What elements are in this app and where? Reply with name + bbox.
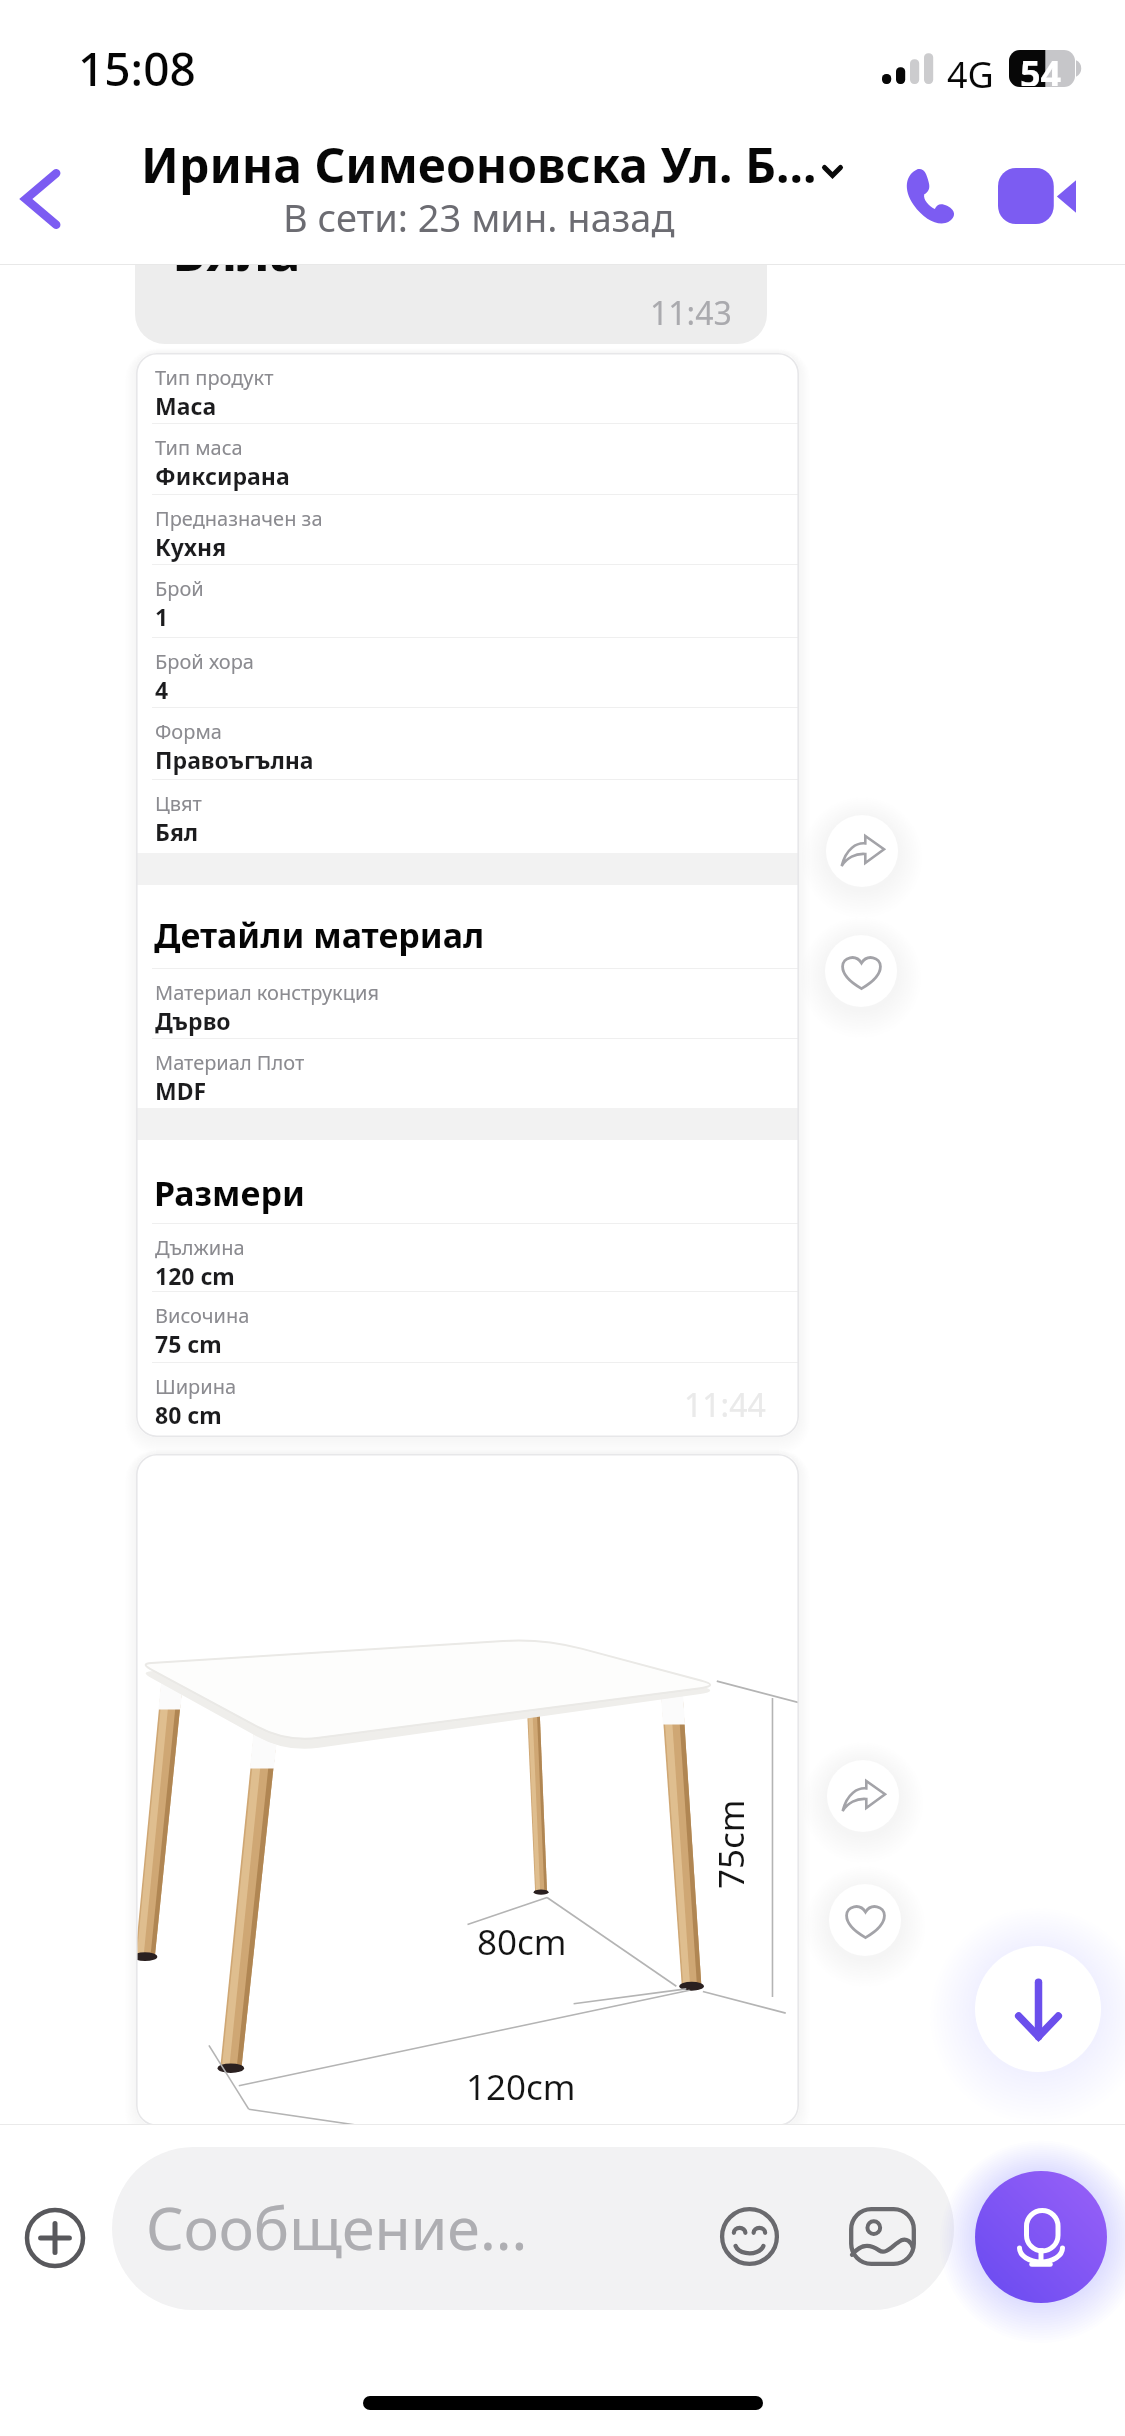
- staticText: Кухня: [155, 531, 227, 562]
- button[interactable]: Send image: [837, 2196, 927, 2276]
- button[interactable]: Сообщение...: [112, 2147, 954, 2310]
- staticText: Брой: [155, 575, 204, 602]
- staticText: 80cm: [477, 1918, 567, 1966]
- staticText: Бял: [155, 816, 199, 847]
- staticText: 75cm: [707, 1799, 755, 1889]
- staticText: Фиксирана: [155, 460, 290, 491]
- staticText: 4: [155, 674, 169, 705]
- staticText: Цвят: [155, 790, 202, 817]
- staticText: 54: [1020, 49, 1062, 86]
- staticText: Тип маса: [155, 434, 243, 461]
- staticText: 80 cm: [155, 1399, 222, 1430]
- staticText: Ирина Симеоновска Ул. Б...: [141, 132, 817, 197]
- staticText: Бяла: [172, 215, 301, 286]
- staticText: Дърво: [155, 1005, 231, 1036]
- button[interactable]: Add attachment: [11, 2194, 99, 2282]
- staticText: Тип продукт: [155, 364, 274, 391]
- staticText: Предназначен за: [155, 505, 323, 532]
- staticText: В сети: 23 мин. назад: [283, 191, 675, 243]
- button[interactable]: Forward: [803, 1736, 923, 1856]
- button[interactable]: Scroll to bottom: [921, 1892, 1125, 2126]
- button[interactable]: Back: [0, 152, 82, 248]
- staticText: Форма: [155, 718, 222, 745]
- button[interactable]: Like: [805, 1860, 925, 1980]
- staticText: Брой хора: [155, 648, 254, 675]
- staticText: 15:08: [78, 37, 196, 100]
- button[interactable]: Forward: [802, 791, 922, 911]
- staticText: 120 cm: [155, 1260, 235, 1291]
- staticText: Детайли материал: [154, 912, 485, 958]
- button[interactable]: Video call: [982, 148, 1092, 244]
- staticText: MDF: [155, 1075, 207, 1106]
- staticText: 120cm: [466, 2063, 576, 2111]
- button[interactable]: Record voice message: [941, 2137, 1125, 2337]
- staticText: Маса: [155, 390, 217, 421]
- staticText: Сообщение...: [146, 2187, 528, 2267]
- staticText: 4G: [947, 50, 994, 99]
- staticText: 11:43: [650, 291, 732, 335]
- staticText: Материал Плот: [155, 1049, 305, 1076]
- button[interactable]: Тип продукт: [136, 353, 799, 1437]
- staticText: Размери: [154, 1170, 305, 1216]
- staticText: Ширина: [155, 1373, 237, 1400]
- staticText: Материал конструкция: [155, 979, 379, 1006]
- staticText: Височина: [155, 1302, 250, 1329]
- button[interactable]: 75cm: [136, 1454, 799, 2126]
- staticText: 11:44: [684, 1383, 766, 1427]
- staticText: 75 cm: [155, 1328, 222, 1359]
- staticText: Правоъгълна: [155, 744, 314, 775]
- button[interactable]: Like: [801, 911, 921, 1031]
- button[interactable]: Emoji: [709, 2196, 789, 2276]
- button[interactable]: Ирина Симеоновска Ул. Б...: [140, 130, 860, 250]
- staticText: 1: [155, 601, 169, 632]
- button[interactable]: Call: [876, 148, 980, 244]
- staticText: Дължина: [155, 1234, 245, 1261]
